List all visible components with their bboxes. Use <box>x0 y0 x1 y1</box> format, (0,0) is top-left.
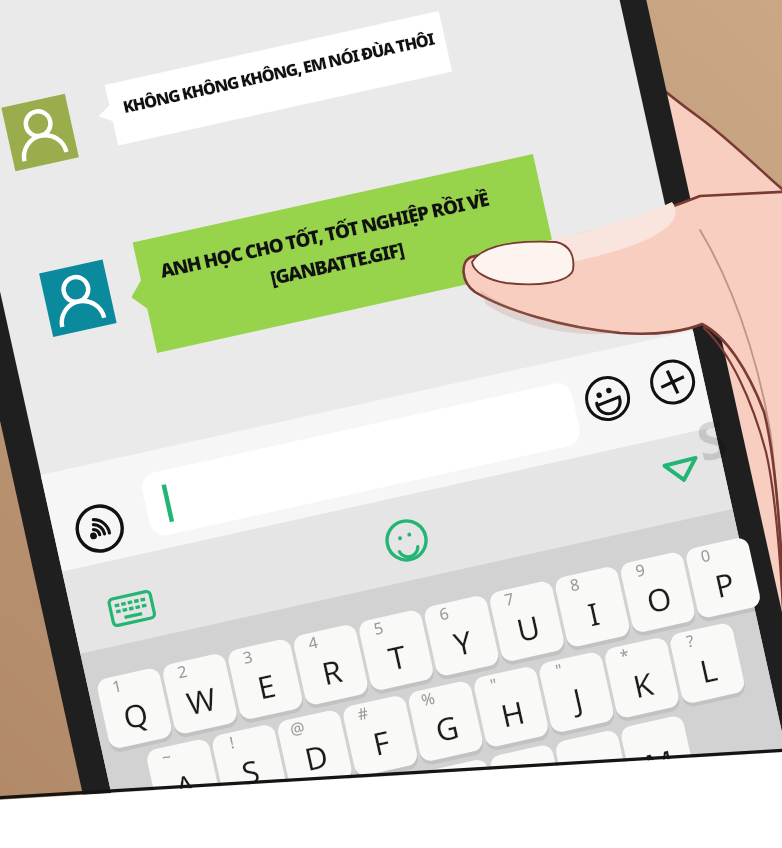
button[interactable]: Chat conversation screen <box>0 0 782 848</box>
